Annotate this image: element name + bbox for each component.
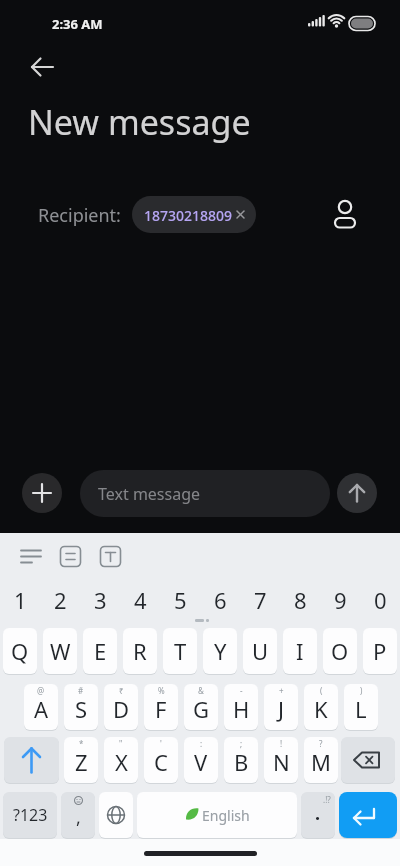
button[interactable] xyxy=(17,543,45,571)
button[interactable]: 9 xyxy=(323,582,357,618)
button[interactable] xyxy=(96,543,124,571)
staticText: New message xyxy=(28,99,251,145)
button[interactable]: : xyxy=(184,737,218,783)
staticText: , xyxy=(76,805,81,830)
staticText: % xyxy=(158,685,165,696)
button[interactable]: * xyxy=(64,737,98,783)
staticText: ' xyxy=(160,738,162,749)
button[interactable]: @ xyxy=(24,684,58,730)
staticText: 4 xyxy=(134,585,147,615)
staticText: @ xyxy=(37,685,45,696)
button[interactable]: . xyxy=(301,792,335,838)
button[interactable]: ) xyxy=(344,684,378,730)
staticText: : xyxy=(200,738,203,749)
staticText: 9 xyxy=(334,585,347,615)
staticText: V xyxy=(194,747,208,777)
staticText: 5 xyxy=(174,585,187,615)
staticText: 2 xyxy=(54,585,67,615)
button[interactable]: 6 xyxy=(203,582,237,618)
staticText: 8 xyxy=(294,585,307,615)
staticText: # xyxy=(78,685,84,696)
button[interactable]: English xyxy=(137,792,297,838)
button[interactable]: ' xyxy=(144,737,178,783)
staticText: Text message xyxy=(98,483,201,505)
staticText: . xyxy=(315,801,321,826)
staticText: O xyxy=(331,636,349,666)
button[interactable]: 7 xyxy=(243,582,277,618)
staticText: C xyxy=(154,747,168,777)
button[interactable] xyxy=(327,192,363,236)
staticText: Y xyxy=(214,636,227,666)
staticText: ; xyxy=(240,738,243,749)
staticText: D xyxy=(113,694,130,724)
staticText: A xyxy=(34,694,49,724)
staticText: " xyxy=(119,738,123,749)
staticText: J xyxy=(278,694,285,724)
staticText: Q xyxy=(11,636,29,666)
button[interactable] xyxy=(337,473,377,513)
staticText: I xyxy=(296,636,304,666)
staticText: ! xyxy=(280,738,283,749)
button[interactable]: # xyxy=(64,684,98,730)
button[interactable]: 4 xyxy=(123,582,157,618)
button[interactable]: E xyxy=(83,628,117,674)
button[interactable]: 0 xyxy=(363,582,397,618)
button[interactable]: R xyxy=(123,628,157,674)
button[interactable] xyxy=(341,737,395,783)
staticText: 3 xyxy=(94,585,107,615)
button[interactable]: + xyxy=(264,684,298,730)
button[interactable]: ; xyxy=(224,737,258,783)
button[interactable] xyxy=(22,53,62,81)
button[interactable]: 2 xyxy=(43,582,77,618)
staticText: T xyxy=(174,636,187,666)
staticText: Z xyxy=(75,747,88,777)
staticText: B xyxy=(234,747,249,777)
button[interactable]: ! xyxy=(264,737,298,783)
staticText: M xyxy=(311,747,331,777)
button[interactable]: W xyxy=(43,628,77,674)
staticText: ) xyxy=(360,685,363,696)
button[interactable]: 8 xyxy=(283,582,317,618)
button[interactable]: " xyxy=(104,737,138,783)
button[interactable]: 3 xyxy=(83,582,117,618)
staticText: H xyxy=(233,694,250,724)
staticText: S xyxy=(75,694,88,724)
button[interactable]: ₹ xyxy=(104,684,138,730)
button[interactable] xyxy=(56,543,84,571)
button[interactable]: 5 xyxy=(163,582,197,618)
button[interactable] xyxy=(22,473,62,513)
button[interactable] xyxy=(339,792,397,838)
staticText: .!? xyxy=(323,794,331,805)
staticText: ( xyxy=(320,685,323,696)
button[interactable]: Q xyxy=(3,628,37,674)
staticText: Recipient: xyxy=(38,203,121,228)
staticText: 7 xyxy=(254,585,267,615)
button[interactable]: O xyxy=(323,628,357,674)
staticText: K xyxy=(314,694,328,724)
button[interactable]: ( xyxy=(304,684,338,730)
button[interactable]: 18730218809 xyxy=(132,196,256,233)
button[interactable] xyxy=(4,737,59,783)
button[interactable]: U xyxy=(243,628,277,674)
button[interactable]: % xyxy=(144,684,178,730)
button[interactable]: P xyxy=(363,628,397,674)
staticText: E xyxy=(94,636,107,666)
button[interactable]: Y xyxy=(203,628,237,674)
button[interactable]: Text message xyxy=(80,470,330,517)
button[interactable]: T xyxy=(163,628,197,674)
button[interactable]: ? xyxy=(304,737,338,783)
button[interactable]: & xyxy=(184,684,218,730)
staticText: 0 xyxy=(374,585,387,615)
staticText: ?123 xyxy=(13,804,48,826)
staticText: 2:36 AM xyxy=(52,15,103,33)
button[interactable]: ?123 xyxy=(3,792,57,838)
staticText: L xyxy=(355,694,367,724)
staticText: R xyxy=(133,636,147,666)
staticText: English xyxy=(202,806,250,825)
button[interactable]: I xyxy=(283,628,317,674)
button[interactable]: - xyxy=(224,684,258,730)
button[interactable]: , xyxy=(61,792,95,838)
staticText: ? xyxy=(319,738,323,749)
button[interactable] xyxy=(99,792,133,838)
button[interactable]: 1 xyxy=(3,582,37,618)
